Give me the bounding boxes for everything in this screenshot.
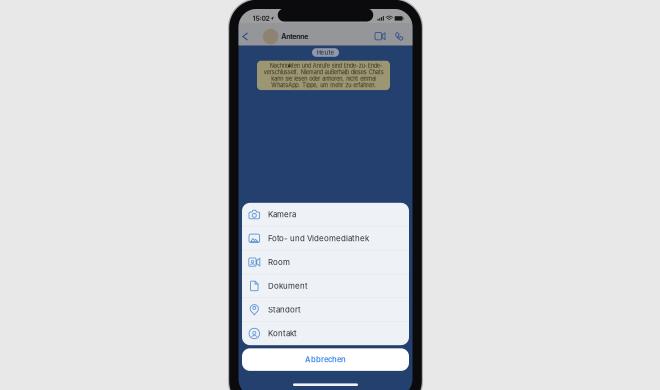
staticText: Nachrichten und Anrufe sind Ende-zu-Ende… <box>263 62 383 89</box>
staticText: Kamera <box>268 210 296 219</box>
staticText: Standort <box>268 305 301 314</box>
button[interactable]: Room <box>242 250 409 274</box>
button[interactable]: Dokument <box>242 274 409 298</box>
staticText: Dokument <box>268 281 308 291</box>
button[interactable]: Foto- und Videomediathek <box>242 227 409 250</box>
button[interactable]: Back <box>239 29 251 44</box>
button[interactable]: Kontakt <box>242 322 409 345</box>
staticText: Heute <box>316 49 334 56</box>
button[interactable]: Antenne <box>263 27 308 46</box>
button[interactable]: Standort <box>242 298 409 321</box>
button[interactable]: Abbrechen <box>242 348 409 371</box>
staticText: 15:02 <box>252 14 269 22</box>
button[interactable]: Video call <box>371 29 388 43</box>
staticText: Abbrechen <box>305 355 346 364</box>
staticText: Room <box>268 257 290 267</box>
button[interactable]: Kamera <box>242 203 409 226</box>
button[interactable]: Voice call <box>391 29 407 44</box>
staticText: Kontakt <box>268 329 297 338</box>
staticText: Foto- und Videomediathek <box>268 233 369 243</box>
staticText: Antenne <box>281 32 308 41</box>
